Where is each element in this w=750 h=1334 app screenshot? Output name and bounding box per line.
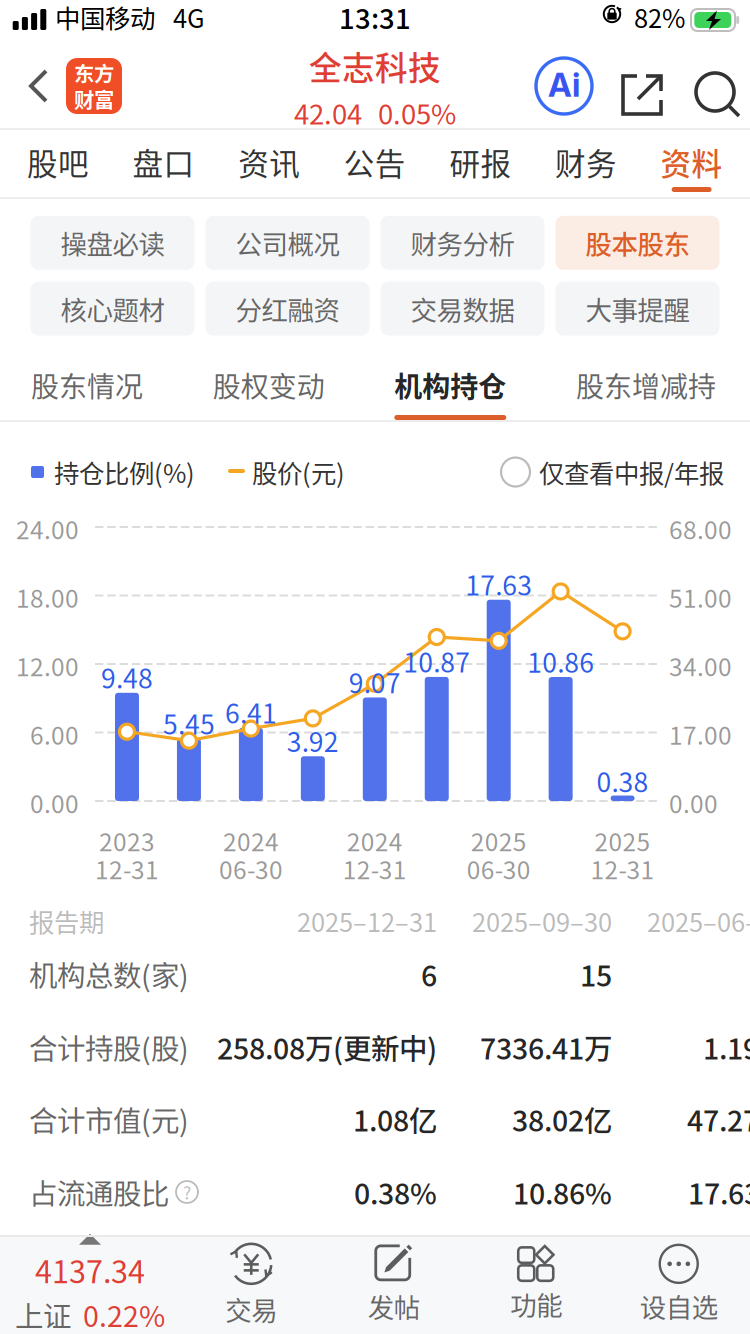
button[interactable]: 财务 xyxy=(533,130,639,199)
staticText: 发帖 xyxy=(368,1287,420,1325)
staticText: 公告 xyxy=(344,140,406,184)
staticText: 6.41 xyxy=(225,693,277,731)
button[interactable]: 机构持仓 xyxy=(394,347,506,422)
button[interactable]: 资讯 xyxy=(216,130,322,199)
staticText: 股价(元) xyxy=(252,454,345,490)
staticText: 大事提醒 xyxy=(585,289,689,328)
button[interactable]: 公告 xyxy=(322,130,428,199)
button[interactable]: 操盘必读 xyxy=(30,216,194,270)
button[interactable]: 研报 xyxy=(428,130,533,199)
staticText: 0.00 xyxy=(669,785,718,820)
staticText: 中国移动 4G xyxy=(55,0,205,35)
staticText: 分红融资 xyxy=(235,289,339,328)
staticText: 7336.41万 xyxy=(480,1026,612,1068)
staticText: 6.00 xyxy=(30,716,79,752)
staticText: 交易数据 xyxy=(410,289,514,328)
staticText: 报告期 xyxy=(29,903,104,939)
button[interactable]: 返回 xyxy=(14,54,66,118)
staticText: 股吧 xyxy=(27,140,89,184)
staticText: 42.04 xyxy=(294,93,362,132)
staticText: 股本股东 xyxy=(585,224,689,262)
staticText: 机构持仓 xyxy=(394,365,506,405)
staticText: 操盘必读 xyxy=(60,224,164,262)
staticText: 0.00 xyxy=(30,785,79,820)
button[interactable]: 仅查看中报/年报 xyxy=(501,454,724,490)
staticText: 2023 xyxy=(99,823,155,858)
staticText: Ai xyxy=(548,65,580,105)
staticText: 1.08亿 xyxy=(353,1098,437,1140)
staticText: 10.87 xyxy=(403,642,470,680)
staticText: 0.05% xyxy=(378,93,456,132)
button[interactable]: 股东增减持 xyxy=(576,347,716,422)
staticText: 资讯 xyxy=(238,140,300,184)
button[interactable]: 搜索 xyxy=(686,63,750,127)
staticText: 核心题材 xyxy=(60,289,164,328)
button[interactable]: 核心题材 xyxy=(30,282,194,336)
staticText: 2025–06–30 xyxy=(647,903,750,939)
staticText: ? xyxy=(183,1179,191,1205)
staticText: 1.19亿 xyxy=(703,1026,750,1068)
button[interactable]: 股吧 xyxy=(5,130,111,199)
staticText: 功能 xyxy=(510,1285,562,1323)
staticText: 研报 xyxy=(449,140,511,184)
button[interactable]: 交易 xyxy=(180,1235,322,1334)
staticText: 上证 xyxy=(15,1294,71,1334)
staticText: 2024 xyxy=(347,823,403,858)
staticText: 13:31 xyxy=(339,0,411,37)
staticText: 4137.34 xyxy=(35,1248,145,1292)
button[interactable]: 股权变动 xyxy=(213,347,325,422)
staticText: 2024 xyxy=(223,823,279,858)
staticText: 2025–12–31 xyxy=(297,903,437,939)
staticText: 机构总数(家) xyxy=(29,953,189,995)
button[interactable]: 4137.34 xyxy=(0,1235,180,1334)
staticText: 15 xyxy=(580,953,612,995)
button[interactable]: 功能 xyxy=(465,1235,607,1334)
button[interactable]: 发帖 xyxy=(322,1235,465,1334)
button[interactable]: 盘口 xyxy=(111,130,216,199)
staticText: 24.00 xyxy=(16,511,79,546)
staticText: 258.08万(更新中) xyxy=(217,1026,437,1068)
button[interactable]: 股东情况 xyxy=(31,347,143,422)
staticText: 东方 xyxy=(74,58,114,87)
staticText: 10.86 xyxy=(527,642,594,680)
staticText: 全志科技 xyxy=(309,42,441,90)
staticText: 交易 xyxy=(225,1290,277,1328)
staticText: 12-31 xyxy=(343,851,407,886)
staticText: 10.86% xyxy=(513,1171,612,1213)
staticText: 9.48 xyxy=(101,658,153,696)
staticText: 仅查看中报/年报 xyxy=(539,454,724,490)
staticText: 12.00 xyxy=(16,648,79,683)
staticText: 占流通股比 xyxy=(29,1171,169,1213)
staticText: 股东情况 xyxy=(31,365,143,405)
staticText: 17.63 xyxy=(465,565,532,603)
button[interactable]: 大事提醒 xyxy=(555,282,719,336)
button[interactable]: 交易数据 xyxy=(380,282,544,336)
staticText: 盘口 xyxy=(133,140,195,184)
button[interactable]: 公司概况 xyxy=(205,216,369,270)
staticText: 5.45 xyxy=(163,704,215,742)
staticText: 股权变动 xyxy=(213,365,325,405)
button[interactable]: 设自选 xyxy=(607,1235,750,1334)
button[interactable]: 分红融资 xyxy=(205,282,369,336)
staticText: 68.00 xyxy=(669,511,732,546)
staticText: 0.38% xyxy=(354,1171,437,1213)
staticText: 18.00 xyxy=(16,579,79,615)
staticText: 47.27亿 xyxy=(687,1098,750,1140)
staticText: 06-30 xyxy=(219,851,283,886)
button[interactable]: 财务分析 xyxy=(380,216,544,270)
staticText: 51.00 xyxy=(669,579,732,615)
staticText: 资料 xyxy=(661,140,723,184)
button[interactable]: AI 助手 xyxy=(530,52,598,120)
staticText: 06-30 xyxy=(467,851,531,886)
staticText: 82% xyxy=(634,0,685,35)
button[interactable]: 股本股东 xyxy=(555,216,719,270)
staticText: 12-31 xyxy=(591,851,655,886)
staticText: 股东增减持 xyxy=(576,365,716,405)
button[interactable]: 分享 xyxy=(610,63,674,127)
staticText: 34.00 xyxy=(669,648,732,683)
staticText: 财务 xyxy=(555,140,617,184)
staticText: 合计持股(股) xyxy=(29,1026,189,1068)
staticText: 公司概况 xyxy=(235,224,339,262)
button[interactable]: 资料 xyxy=(639,130,744,199)
button[interactable]: 东方财富 xyxy=(66,58,122,114)
